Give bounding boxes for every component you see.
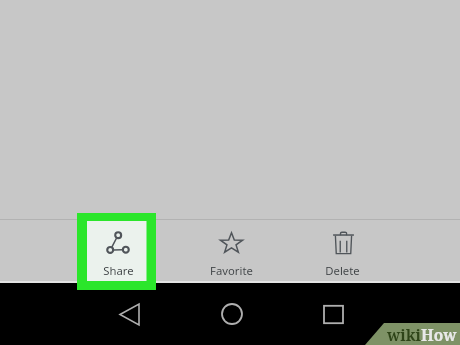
button[interactable]: Back bbox=[96, 294, 162, 334]
staticText: Favorite bbox=[210, 263, 253, 278]
button[interactable]: Delete bbox=[293, 220, 393, 283]
button[interactable]: Favorite bbox=[181, 220, 281, 283]
staticText: wikiHow bbox=[387, 324, 457, 345]
button[interactable]: Share bbox=[68, 220, 168, 283]
button[interactable]: Recents bbox=[300, 294, 366, 334]
button[interactable]: Home bbox=[199, 294, 265, 334]
staticText: Share bbox=[103, 263, 134, 278]
staticText: Delete bbox=[325, 263, 360, 278]
